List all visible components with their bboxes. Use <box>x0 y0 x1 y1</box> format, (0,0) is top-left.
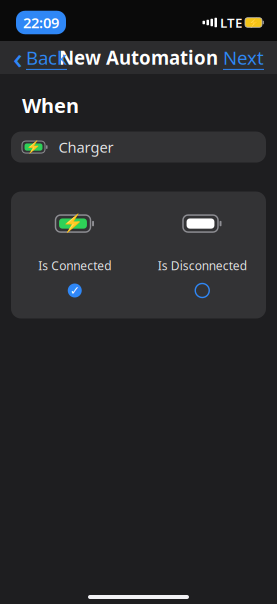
staticText: Charger <box>58 137 113 157</box>
staticText: 22:09 <box>23 13 59 32</box>
button[interactable]: Is Disconnected <box>138 213 266 297</box>
staticText: Next <box>223 45 264 70</box>
staticText: Is Disconnected <box>158 258 247 273</box>
staticText: ⚡ <box>62 214 84 233</box>
staticText: When <box>22 92 79 119</box>
staticText: ‹ <box>13 38 23 77</box>
staticText: New Automation <box>59 45 218 70</box>
staticText: ⚡ <box>247 17 259 28</box>
staticText: Is Connected <box>38 258 111 273</box>
button[interactable]: ⚡ <box>11 213 138 297</box>
button[interactable]: ⚡ <box>11 132 266 163</box>
staticText: ✓ <box>70 284 80 297</box>
button[interactable]: ‹ <box>5 32 75 83</box>
staticText: Back <box>26 45 67 70</box>
staticText: ⚡ <box>26 140 41 154</box>
button[interactable]: Next <box>215 39 272 76</box>
staticText: LTE <box>220 14 242 31</box>
